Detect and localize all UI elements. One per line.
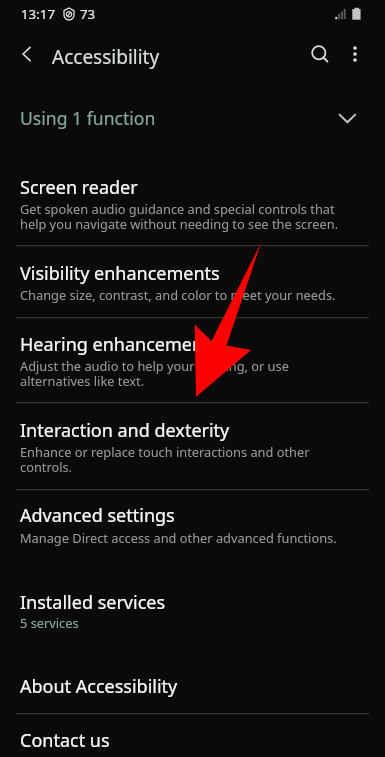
staticText: About Accessibility [20, 674, 178, 699]
staticText: Get spoken audio guidance and special co… [20, 200, 339, 233]
button[interactable]: Visibility enhancements [0, 246, 385, 318]
staticText: Change size, contrast, and color to meet… [20, 286, 336, 303]
staticText: Interaction and dexterity [20, 418, 230, 443]
staticText: Hearing enhancements [20, 332, 219, 357]
button[interactable]: Using 1 function [0, 83, 385, 158]
button[interactable]: About Accessibility [0, 661, 385, 713]
staticText: 13:17 [21, 5, 55, 23]
staticText: Contact us [20, 728, 110, 753]
staticText: Using 1 function [20, 106, 156, 130]
staticText: Manage Direct access and other advanced … [20, 529, 337, 546]
staticText: Adjust the audio to help your hearing, o… [20, 357, 289, 390]
button[interactable]: Installed services [0, 574, 385, 646]
button[interactable]: More options [333, 32, 377, 76]
staticText: 73 [80, 5, 96, 23]
staticText: Installed services [20, 590, 166, 615]
button[interactable]: Contact us [0, 714, 385, 757]
button[interactable]: Advanced settings [0, 489, 385, 560]
staticText: Advanced settings [20, 503, 175, 528]
staticText: Accessibility [52, 44, 160, 70]
button[interactable]: Hearing enhancements [0, 317, 385, 402]
button[interactable]: Search [296, 32, 340, 76]
staticText: 5 services [20, 614, 79, 631]
staticText: Visibility enhancements [20, 261, 220, 286]
staticText: Screen reader [20, 175, 138, 200]
staticText: Enhance or replace touch interactions an… [20, 443, 310, 476]
button[interactable]: Interaction and dexterity [0, 402, 385, 489]
button[interactable]: Screen reader [0, 158, 385, 245]
button[interactable]: Navigate up [5, 32, 49, 76]
